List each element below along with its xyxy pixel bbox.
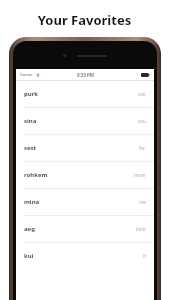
staticText: me <box>139 199 146 205</box>
button[interactable]: sina <box>16 108 154 134</box>
button[interactable]: purk <box>16 81 154 107</box>
staticText: you <box>138 118 146 124</box>
staticText: sina <box>24 117 37 125</box>
staticText: mina <box>24 198 40 206</box>
staticText: purk <box>24 90 39 98</box>
button[interactable]: mina <box>16 189 154 215</box>
staticText: can <box>138 91 146 97</box>
staticText: aeg <box>24 225 35 233</box>
staticText: Your Favorites <box>0 11 169 29</box>
button[interactable]: sest <box>16 135 154 161</box>
staticText: rohkem <box>24 171 48 179</box>
staticText: kui <box>24 252 34 260</box>
staticText: Carrier <box>20 72 34 77</box>
staticText: time <box>136 226 146 232</box>
button[interactable]: rohkem <box>16 162 154 188</box>
button[interactable]: aeg <box>16 216 154 242</box>
staticText: for <box>139 145 146 151</box>
staticText: 9:33 PM <box>77 72 94 78</box>
staticText: if <box>143 253 146 259</box>
staticText: more <box>134 172 146 178</box>
staticText: sest <box>24 144 37 152</box>
button[interactable]: kui <box>16 243 154 269</box>
